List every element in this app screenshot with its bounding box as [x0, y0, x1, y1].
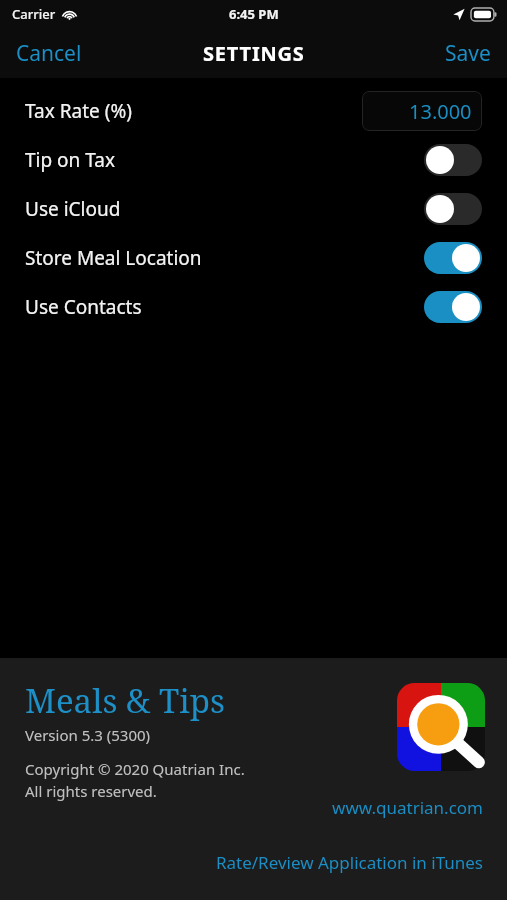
button[interactable]: On	[424, 291, 482, 323]
staticText: Use Contacts	[25, 294, 142, 320]
button[interactable]: Rate/Review Application in iTunes	[215, 847, 483, 878]
button[interactable]: Tip on Tax	[0, 135, 507, 184]
button[interactable]: Save	[429, 31, 507, 76]
staticText: Tip on Tax	[25, 147, 116, 173]
button[interactable]: Tax Rate (%)	[0, 86, 507, 135]
staticText: 13.000	[409, 98, 472, 125]
staticText: Meals & Tips	[25, 678, 225, 723]
staticText: www.quatrian.com	[332, 796, 483, 819]
staticText: Save	[445, 39, 491, 68]
staticText: All rights reserved.	[25, 781, 157, 801]
button[interactable]: www.quatrian.com	[332, 792, 483, 823]
staticText: Store Meal Location	[25, 245, 202, 271]
button[interactable]: Use Contacts	[0, 282, 507, 331]
staticText: Rate/Review Application in iTunes	[215, 851, 483, 874]
staticText: Use iCloud	[25, 196, 121, 222]
staticText: Cancel	[16, 39, 82, 68]
other: Quatrian logo	[397, 683, 485, 771]
staticText: Copyright © 2020 Quatrian Inc.	[25, 759, 245, 779]
button[interactable]: Off	[424, 144, 482, 176]
staticText: Carrier	[12, 5, 56, 23]
button[interactable]: Store Meal Location	[0, 233, 507, 282]
button[interactable]: Cancel	[0, 31, 98, 76]
button[interactable]: Use iCloud	[0, 184, 507, 233]
staticText: 6:45 PM	[229, 5, 279, 23]
button[interactable]: On	[424, 242, 482, 274]
staticText: Tax Rate (%)	[25, 98, 132, 124]
staticText: Version 5.3 (5300)	[25, 725, 151, 745]
button[interactable]: Off	[424, 193, 482, 225]
staticText: SETTINGS	[203, 40, 305, 67]
button[interactable]: 13.000	[362, 91, 482, 131]
